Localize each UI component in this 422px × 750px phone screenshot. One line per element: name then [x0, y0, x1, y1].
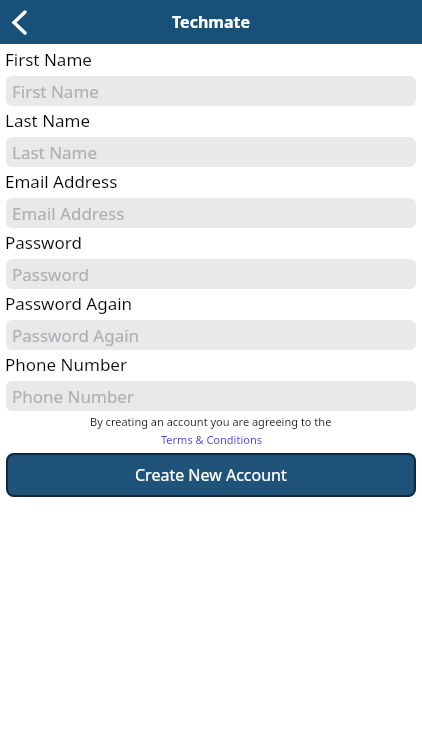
- staticText: First Name: [12, 80, 99, 103]
- button[interactable]: First Name: [6, 76, 416, 106]
- staticText: Email Address: [5, 170, 118, 193]
- button[interactable]: [0, 0, 44, 44]
- button[interactable]: Password: [6, 259, 416, 289]
- staticText: Email Address: [12, 202, 125, 225]
- staticText: Techmate: [172, 11, 251, 33]
- staticText: Create New Account: [135, 464, 287, 486]
- staticText: Last Name: [12, 141, 98, 164]
- staticText: Password Again: [12, 324, 140, 347]
- staticText: Phone Number: [5, 353, 127, 376]
- button[interactable]: Password Again: [6, 320, 416, 350]
- button[interactable]: Email Address: [6, 198, 416, 228]
- staticText: Password Again: [5, 292, 133, 315]
- staticText: Phone Number: [12, 385, 134, 408]
- staticText: First Name: [5, 48, 92, 71]
- button[interactable]: Create New Account: [6, 453, 416, 497]
- button[interactable]: Phone Number: [6, 381, 416, 411]
- staticText: By creating an account you are agreeing …: [90, 414, 332, 429]
- button[interactable]: Last Name: [6, 137, 416, 167]
- staticText: Password: [12, 263, 89, 286]
- staticText: Password: [5, 231, 82, 254]
- button[interactable]: Terms & Conditions: [161, 432, 262, 447]
- staticText: Last Name: [5, 109, 91, 132]
